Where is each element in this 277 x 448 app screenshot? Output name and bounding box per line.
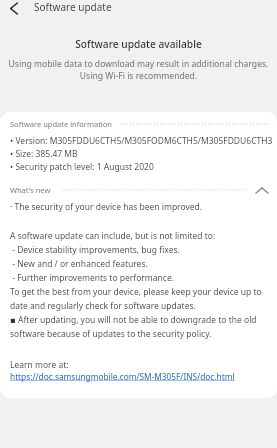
staticText: Learn more at: <box>10 359 69 371</box>
button[interactable]: Navigate up <box>4 0 24 18</box>
staticText: · The security of your device has been i… <box>10 201 203 213</box>
button[interactable]: Collapse <box>252 180 272 200</box>
staticText: • Version: M305FDDU6CTH5/M305FODM6CTH5/M… <box>10 135 273 173</box>
staticText: Using mobile data to download may result… <box>0 58 277 82</box>
staticText: Software update available <box>0 37 277 51</box>
staticText: Software update information <box>10 119 112 129</box>
button[interactable]: https://doc.samsungmobile.com/SM-M305F/I… <box>10 371 235 382</box>
staticText: What's new <box>10 185 51 195</box>
staticText: A software update can include, but is no… <box>10 230 277 339</box>
staticText: Software update <box>34 0 112 14</box>
